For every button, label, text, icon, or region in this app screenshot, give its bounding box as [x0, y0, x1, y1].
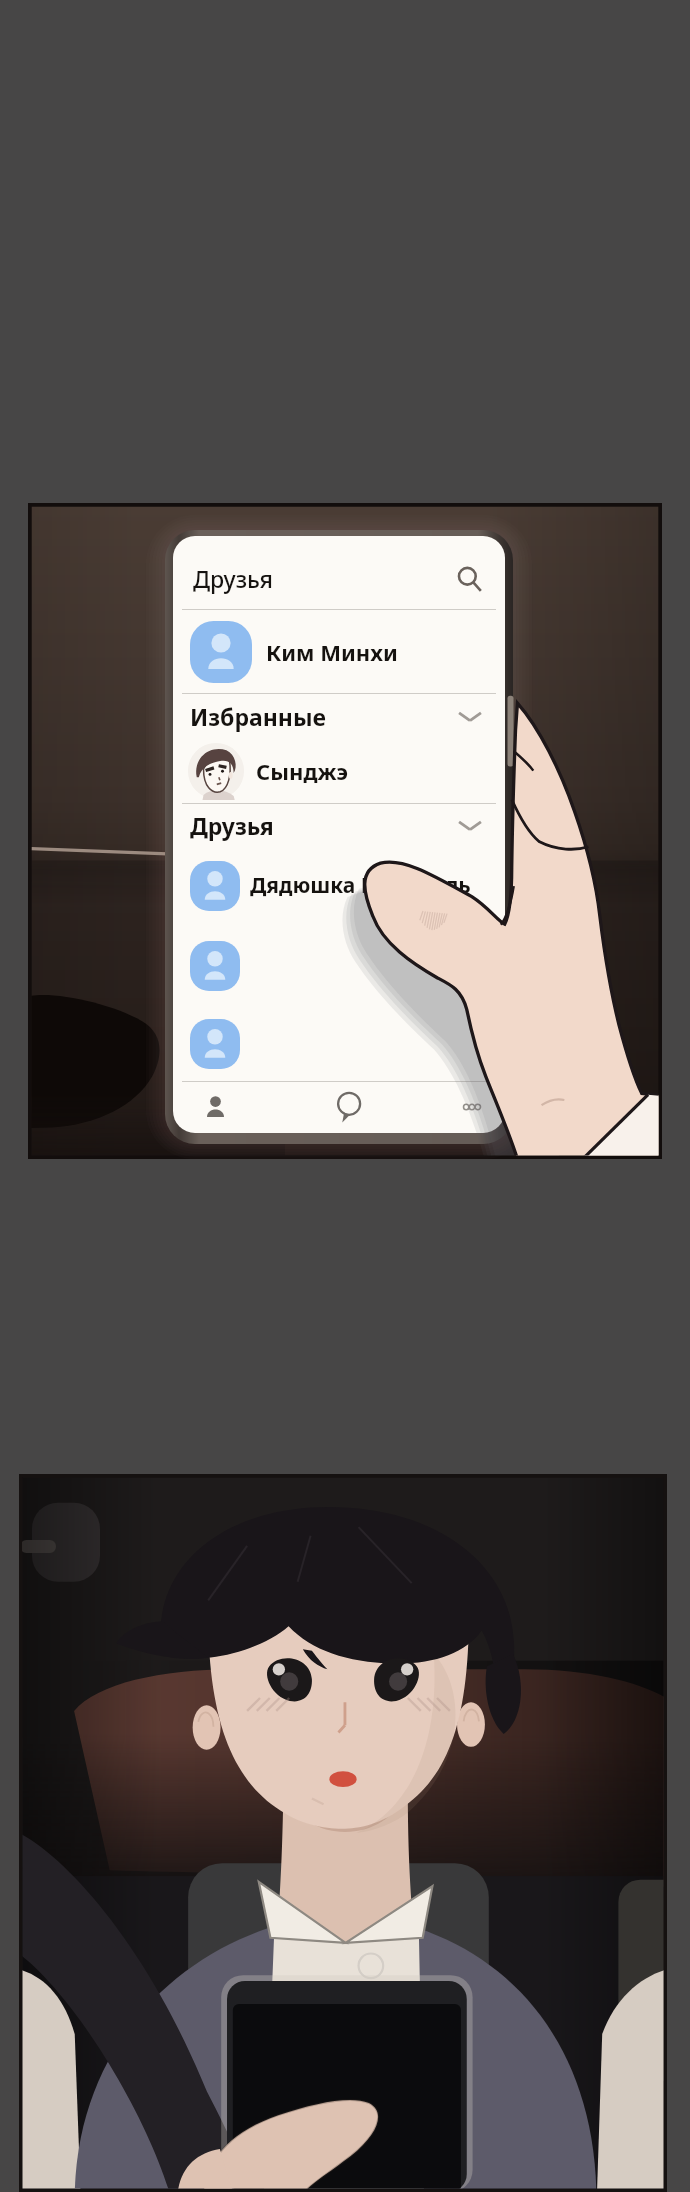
staticText: Дядюшка Кимчхоль — [250, 871, 471, 900]
button[interactable]: Сынджэ — [173, 738, 505, 803]
staticText: Ким Минхи — [266, 637, 398, 667]
staticText: Друзья — [193, 563, 273, 594]
button[interactable] — [173, 925, 505, 1006]
button[interactable]: Избранные — [173, 694, 505, 738]
button[interactable]: Search — [453, 563, 485, 595]
button[interactable]: More options — [439, 1082, 505, 1132]
button[interactable]: Друзья — [173, 804, 505, 846]
button[interactable]: Ким Минхи — [173, 610, 505, 693]
button[interactable]: Друзья — [173, 548, 505, 609]
staticText: Избранные — [190, 701, 326, 732]
button[interactable]: Дядюшка Кимчхоль — [173, 846, 505, 925]
button[interactable] — [173, 1006, 505, 1081]
button[interactable]: Contacts — [173, 1082, 258, 1132]
button[interactable]: Chats — [258, 1082, 439, 1132]
staticText: Сынджэ — [256, 756, 349, 786]
staticText: Друзья — [190, 810, 274, 841]
